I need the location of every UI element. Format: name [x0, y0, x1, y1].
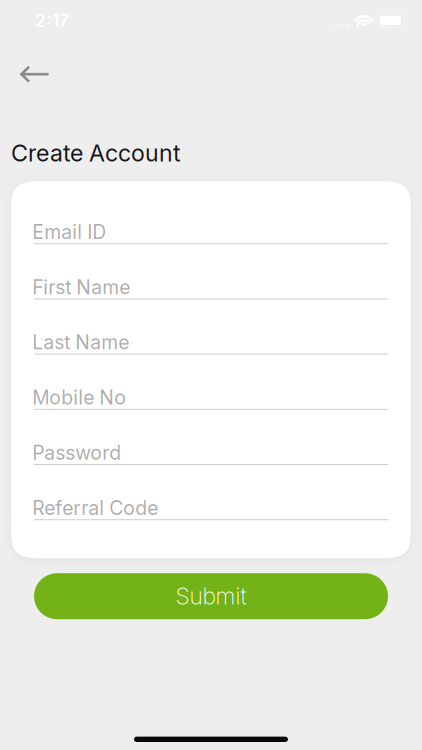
staticText: Password	[32, 441, 121, 464]
staticText: First Name	[32, 275, 130, 299]
button[interactable]: Submit	[34, 573, 388, 619]
staticText: Mobile No	[32, 386, 126, 409]
button[interactable]: Back	[10, 53, 60, 94]
staticText: Last Name	[32, 331, 129, 354]
staticText: Submit	[175, 582, 246, 610]
staticText: Create Account	[11, 139, 181, 167]
staticText: Email ID	[32, 220, 106, 244]
staticText: 2:17	[35, 10, 69, 31]
staticText: Referral Code	[32, 496, 158, 520]
